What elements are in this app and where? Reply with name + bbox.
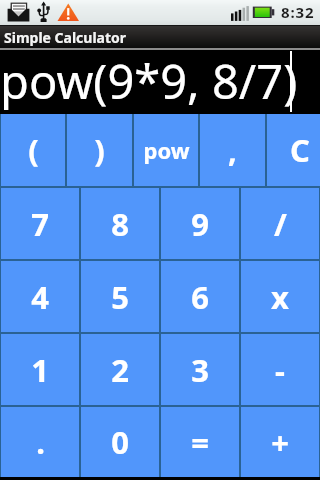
button[interactable]: - (241, 334, 319, 405)
button[interactable]: 6 (161, 261, 239, 332)
staticText: + (271, 421, 289, 463)
button[interactable]: 1 (1, 334, 79, 405)
button[interactable]: x (241, 261, 319, 332)
staticText: C (290, 129, 310, 171)
button[interactable]: ) (67, 114, 132, 186)
staticText: / (274, 203, 287, 245)
staticText: 8:32 (281, 2, 315, 22)
button[interactable]: 5 (81, 261, 159, 332)
staticText: - (275, 349, 285, 391)
staticText: pow (143, 135, 190, 165)
staticText: x (271, 276, 289, 318)
staticText: 8 (111, 203, 129, 245)
button[interactable]: C (267, 114, 320, 186)
staticText: pow(9*9, 8/7) (0, 49, 298, 113)
button[interactable]: , (200, 114, 265, 186)
staticText: ) (94, 129, 105, 171)
staticText: . (36, 421, 45, 463)
staticText: , (228, 129, 237, 171)
staticText: 3 (191, 349, 209, 391)
staticText: 7 (31, 203, 49, 245)
button[interactable]: 8 (81, 188, 159, 259)
button[interactable]: 0 (81, 407, 159, 477)
staticText: Simple Calculator (4, 28, 127, 47)
button[interactable]: = (161, 407, 239, 477)
staticText: = (191, 421, 209, 463)
button[interactable]: ( (1, 114, 65, 186)
staticText: 5 (111, 276, 129, 318)
staticText: 0 (111, 421, 129, 463)
button[interactable]: / (241, 188, 319, 259)
staticText: 1 (31, 349, 49, 391)
button[interactable]: . (1, 407, 79, 477)
button[interactable]: 3 (161, 334, 239, 405)
button[interactable]: 4 (1, 261, 79, 332)
staticText: ( (28, 129, 39, 171)
button[interactable]: 9 (161, 188, 239, 259)
button[interactable]: pow (134, 114, 198, 186)
button[interactable]: + (241, 407, 319, 477)
button[interactable]: 7 (1, 188, 79, 259)
staticText: 6 (191, 276, 209, 318)
staticText: 9 (191, 203, 209, 245)
staticText: 4 (31, 276, 49, 318)
staticText: 2 (111, 349, 129, 391)
button[interactable]: 2 (81, 334, 159, 405)
